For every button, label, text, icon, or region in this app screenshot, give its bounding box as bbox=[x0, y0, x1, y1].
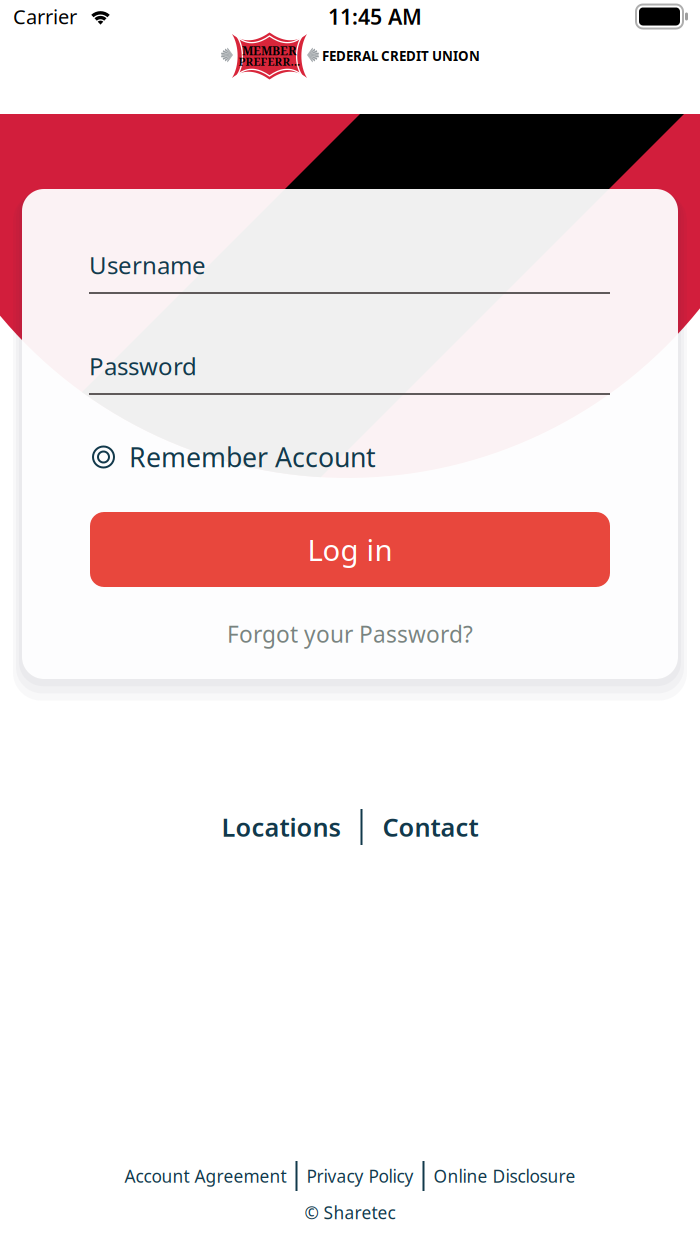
button[interactable]: Forgot your Password? bbox=[22, 614, 678, 654]
staticText: Password bbox=[89, 350, 197, 382]
button[interactable]: Log in bbox=[90, 512, 610, 587]
button[interactable]: Privacy Policy bbox=[306, 1161, 413, 1191]
staticText: PREFERRED bbox=[238, 54, 300, 69]
staticText: Privacy Policy bbox=[306, 1164, 413, 1187]
staticText: MEMBER bbox=[242, 42, 297, 59]
staticText: Carrier bbox=[13, 3, 77, 30]
staticText: Log in bbox=[307, 530, 392, 569]
staticText: Username bbox=[89, 249, 206, 281]
button[interactable]: Locations bbox=[221, 807, 340, 847]
staticText: Forgot your Password? bbox=[227, 619, 473, 649]
button[interactable]: Remember Account bbox=[93, 443, 493, 471]
staticText: Online Disclosure bbox=[433, 1164, 575, 1187]
button[interactable]: Contact bbox=[382, 807, 478, 847]
staticText: Locations bbox=[221, 810, 340, 844]
staticText: 11:45 AM bbox=[328, 2, 422, 31]
staticText: FEDERAL CREDIT UNION bbox=[322, 47, 480, 65]
staticText: Account Agreement bbox=[124, 1164, 286, 1187]
button[interactable]: Account Agreement bbox=[124, 1161, 286, 1191]
staticText: © Sharetec bbox=[304, 1201, 395, 1224]
staticText: Remember Account bbox=[129, 439, 376, 475]
staticText: Contact bbox=[382, 810, 478, 844]
button[interactable]: Online Disclosure bbox=[433, 1161, 575, 1191]
